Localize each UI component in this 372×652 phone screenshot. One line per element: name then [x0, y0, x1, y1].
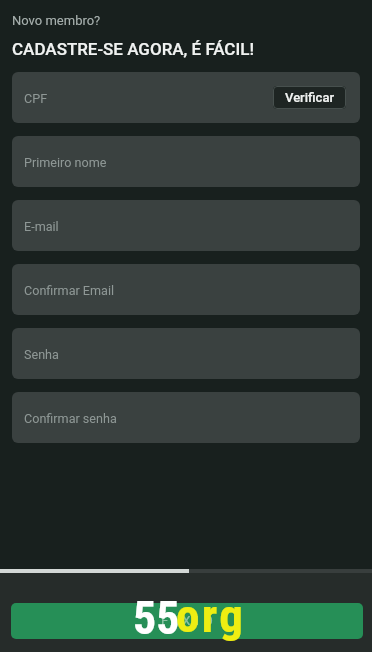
staticText: FIXID [161, 613, 219, 628]
button[interactable]: Verificar [273, 86, 346, 109]
button[interactable]: Confirmar senha [12, 392, 360, 443]
button[interactable]: Senha [12, 328, 360, 379]
button[interactable]: CPF [12, 72, 360, 123]
staticText: Confirmar Email [24, 283, 115, 298]
staticText: 55 [133, 591, 180, 645]
button[interactable]: E-mail [12, 200, 360, 251]
button[interactable]: Confirmar Email [12, 264, 360, 315]
staticText: Novo membro? [12, 13, 101, 28]
staticText: CADASTRE-SE AGORA, É FÁCIL! [12, 39, 254, 59]
staticText: E-mail [24, 219, 59, 234]
staticText: Senha [24, 347, 59, 362]
staticText: CPF [24, 91, 48, 106]
button[interactable] [11, 603, 363, 639]
staticText: Confirmar senha [24, 411, 117, 426]
staticText: Primeiro nome [24, 155, 107, 170]
staticText: Verificar [285, 90, 334, 105]
staticText: org [176, 588, 246, 643]
button[interactable]: Primeiro nome [12, 136, 360, 187]
